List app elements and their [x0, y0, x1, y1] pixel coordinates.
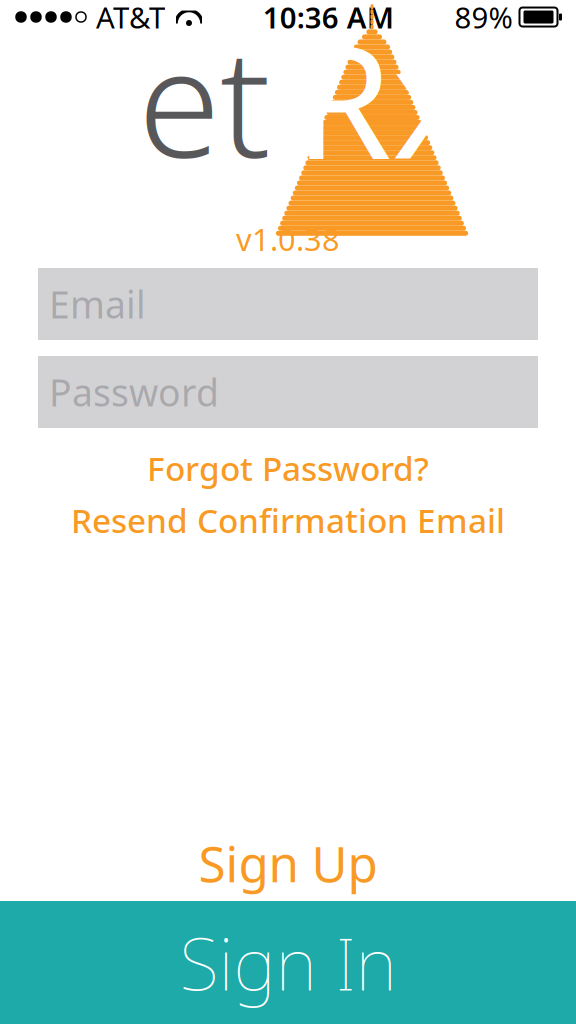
- staticText: AT&T: [96, 0, 165, 36]
- staticText: v1.0.38: [236, 219, 340, 259]
- staticText: Forgot Password?: [147, 446, 429, 490]
- button[interactable]: Forgot Password?: [38, 442, 538, 494]
- staticText: Password: [49, 367, 219, 417]
- button[interactable]: Password: [38, 356, 538, 428]
- staticText: 10:36 AM: [263, 0, 394, 36]
- button[interactable]: Sign In: [0, 901, 576, 1024]
- staticText: Sign Up: [198, 830, 377, 896]
- button[interactable]: Resend Confirmation Email: [38, 494, 538, 546]
- staticText: 89%: [454, 0, 512, 36]
- button[interactable]: Email: [38, 268, 538, 340]
- staticText: Sign In: [179, 915, 396, 1010]
- staticText: get: [138, 0, 275, 199]
- staticText: Email: [49, 279, 146, 329]
- button[interactable]: Sign Up: [0, 825, 576, 901]
- staticText: Resend Confirmation Email: [71, 498, 505, 542]
- staticText: Rx: [294, 0, 475, 202]
